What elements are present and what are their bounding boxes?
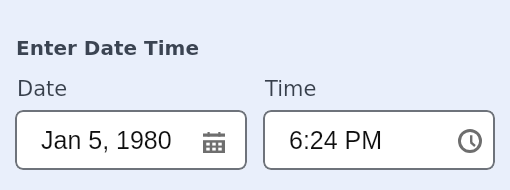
staticText: Date — [17, 77, 68, 101]
button[interactable]: 6:24 PM — [263, 110, 495, 170]
other: Select date — [203, 132, 225, 153]
staticText: Time — [265, 77, 317, 101]
staticText: Jan 5, 1980 — [41, 126, 172, 154]
other: Select time — [458, 129, 482, 153]
staticText: 6:24 PM — [289, 126, 383, 154]
staticText: Enter Date Time — [16, 36, 199, 59]
button[interactable]: Jan 5, 1980 — [15, 110, 247, 170]
